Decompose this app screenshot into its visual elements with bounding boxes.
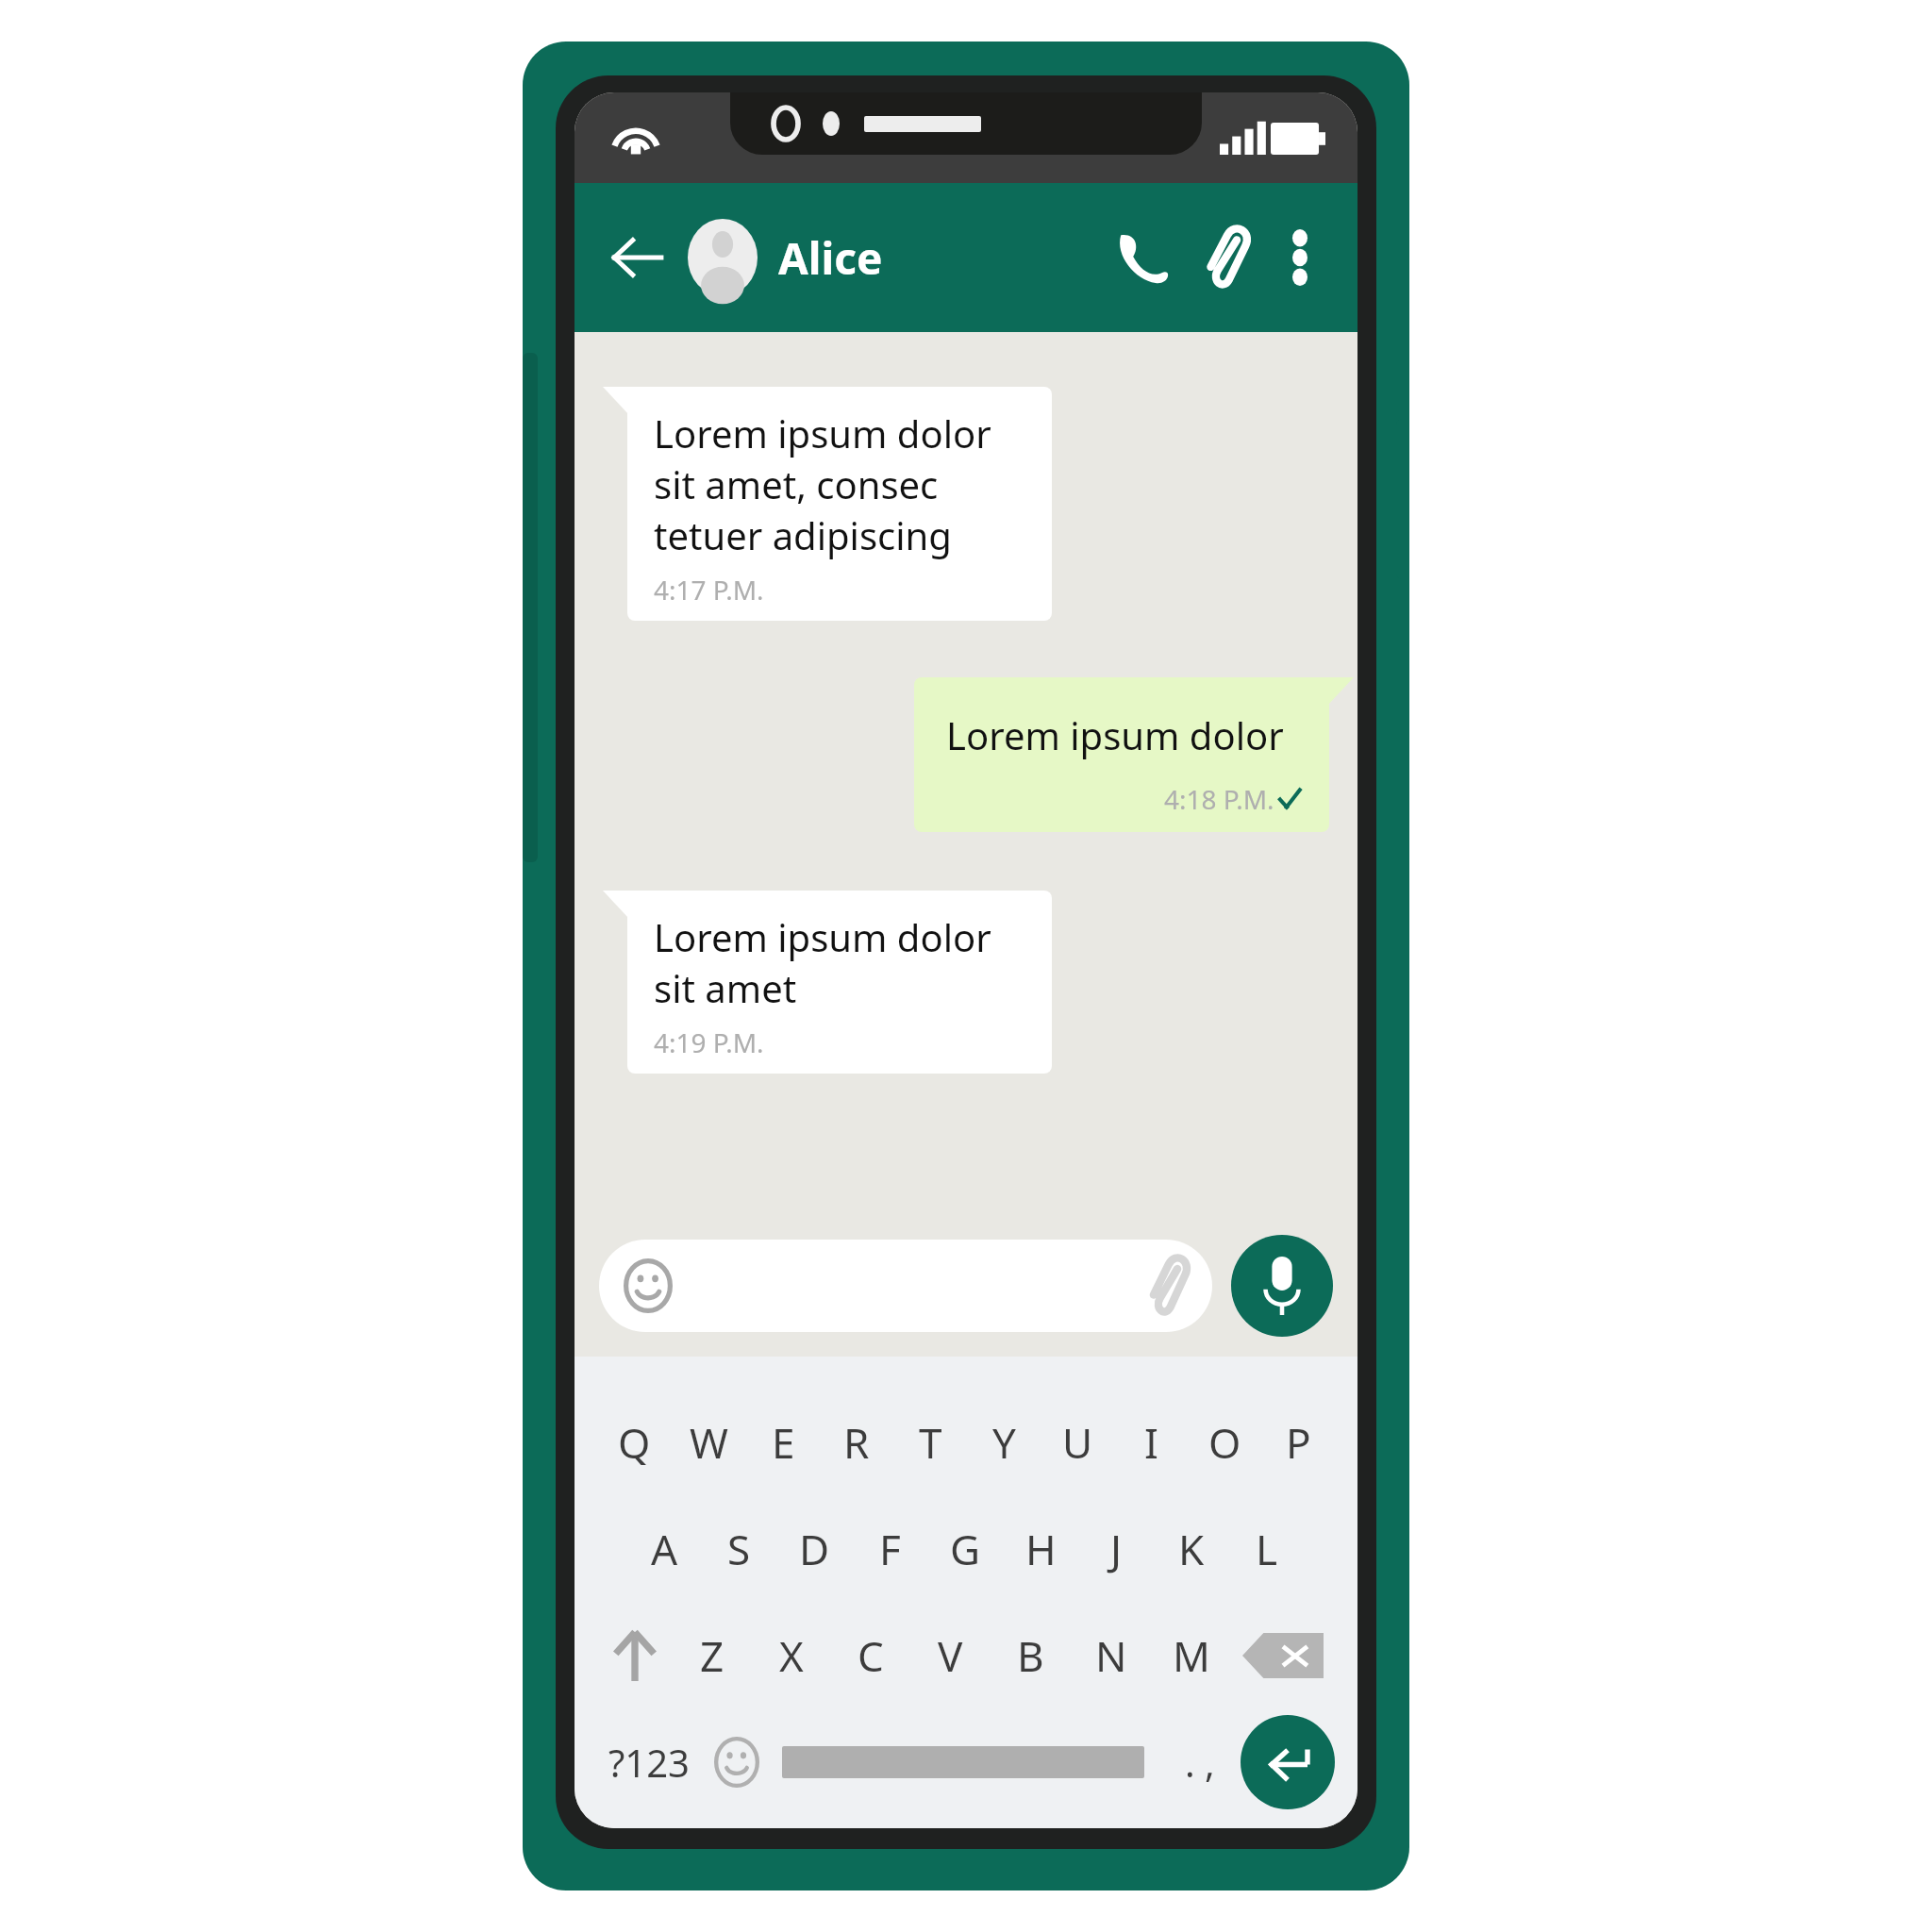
staticText: B [1017,1627,1044,1684]
button[interactable]: Shift [597,1602,673,1708]
staticText: L [1256,1521,1278,1577]
staticText: N [1095,1627,1127,1684]
staticText: D [799,1521,830,1577]
staticText: O [1208,1414,1241,1471]
button[interactable]: H [1003,1495,1078,1602]
staticText: 4:17 P.M. [654,572,1029,608]
staticText: sit amet, consec [654,458,939,509]
button[interactable]: Voice message [1231,1235,1333,1337]
staticText: K [1178,1521,1205,1577]
button[interactable]: Z [673,1602,752,1708]
button[interactable]: R [820,1389,893,1495]
button[interactable]: Lorem ipsum dolor [627,387,1052,621]
staticText: G [950,1521,981,1577]
button[interactable]: S [702,1495,776,1602]
staticText: P [1286,1414,1311,1471]
button[interactable]: G [927,1495,1003,1602]
staticText: R [843,1414,870,1471]
staticText: X [779,1627,804,1684]
staticText: W [690,1414,728,1471]
button[interactable]: C [831,1602,910,1708]
staticText: tetuer adipiscing [654,509,952,560]
button[interactable]: Q [597,1389,672,1495]
button[interactable]: Attach [1191,223,1261,292]
button[interactable]: Space [782,1746,1144,1778]
button[interactable]: Lorem ipsum dolor [914,677,1329,832]
button[interactable]: Alice [778,228,883,288]
staticText: A [651,1521,678,1577]
button[interactable]: ?123 [597,1714,701,1809]
button[interactable]: N [1071,1602,1151,1708]
button[interactable] [599,1240,1212,1332]
button[interactable]: D [776,1495,852,1602]
staticText: 4:19 P.M. [654,1024,1029,1060]
button[interactable]: Emoji [701,1714,773,1809]
button[interactable]: V [910,1602,991,1708]
button[interactable]: M [1151,1602,1231,1708]
staticText: S [727,1521,751,1577]
staticText: M [1173,1627,1210,1684]
button[interactable]: Lorem ipsum dolor [627,891,1052,1074]
button[interactable]: K [1154,1495,1229,1602]
button[interactable]: L [1229,1495,1305,1602]
button[interactable]: Call [1108,223,1178,292]
staticText: 4:18 P.M. [1164,781,1274,817]
button[interactable]: T [893,1389,967,1495]
button[interactable]: E [746,1389,820,1495]
staticText: E [772,1414,795,1471]
button[interactable]: . , [1159,1714,1241,1809]
button[interactable]: Enter [1241,1715,1335,1809]
staticText: Lorem ipsum dolor [946,709,1284,760]
staticText: F [879,1521,901,1577]
button[interactable]: Y [967,1389,1041,1495]
button[interactable]: Back [603,224,671,291]
staticText: Lorem ipsum dolor [654,408,991,458]
button[interactable]: I [1114,1389,1188,1495]
button[interactable]: P [1261,1389,1335,1495]
button[interactable]: A [627,1495,702,1602]
button[interactable]: X [752,1602,831,1708]
button[interactable]: J [1078,1495,1154,1602]
staticText: T [919,1414,942,1471]
staticText: Q [618,1414,651,1471]
staticText: Y [992,1414,1016,1471]
button[interactable]: O [1188,1389,1261,1495]
staticText: Z [700,1627,724,1684]
button[interactable]: B [991,1602,1071,1708]
staticText: ?123 [608,1737,690,1788]
button[interactable]: W [672,1389,746,1495]
staticText: Lorem ipsum dolor [654,911,991,962]
button[interactable]: F [852,1495,927,1602]
button[interactable]: U [1041,1389,1114,1495]
staticText: U [1062,1414,1093,1471]
button[interactable] [688,219,758,296]
button[interactable]: More options [1271,228,1329,287]
staticText: J [1110,1521,1123,1577]
staticText: sit amet [654,962,797,1013]
staticText: I [1144,1414,1158,1471]
staticText: C [858,1627,884,1684]
staticText: H [1025,1521,1057,1577]
staticText: . , [1185,1737,1215,1788]
button[interactable]: Backspace [1231,1602,1335,1708]
staticText: V [938,1627,963,1684]
